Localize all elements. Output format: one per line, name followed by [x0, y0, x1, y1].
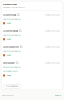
staticText: Register: [55, 94, 62, 96]
staticText: Summarize Payables: [45, 62, 60, 64]
button[interactable]: General Ledger: [3, 61, 60, 65]
staticText: View list: [6, 54, 11, 56]
button[interactable]: View list: [3, 37, 60, 41]
button[interactable]: Reconcile accounts: [3, 69, 60, 73]
button[interactable]: Please set payable task: [3, 65, 60, 69]
button[interactable]: Cash Management: [3, 45, 60, 49]
button[interactable]: View list: [3, 53, 60, 57]
button[interactable]: Please set payable task: [3, 17, 60, 21]
staticText: Please set payable task: [3, 50, 21, 52]
staticText: Start a new chat: [6, 85, 19, 87]
staticText: Close Assistant: [2, 94, 14, 96]
staticText: Please set payable task: [3, 18, 21, 20]
staticText: Need important Work history: [3, 6, 25, 8]
staticText: Account Receivable: [3, 30, 18, 32]
button[interactable]: Account Payable: [3, 13, 60, 17]
staticText: Please set payable task: [3, 34, 21, 36]
staticText: Summarize Payables: [45, 14, 60, 16]
staticText: Summarize Payables: [45, 46, 60, 48]
button[interactable]: Please set payable task: [3, 49, 60, 53]
button[interactable]: Account Receivable: [3, 29, 60, 33]
staticText: View list: [6, 38, 11, 40]
staticText: Reconcile accounts: [3, 70, 18, 72]
button[interactable]: View list: [3, 21, 60, 25]
staticText: Please set payable task: [3, 66, 21, 68]
button[interactable]: Start a new chat: [3, 84, 21, 88]
staticText: View list: [6, 74, 11, 76]
staticText: Close assistant: [3, 3, 17, 6]
button[interactable]: Register: [55, 94, 62, 96]
staticText: Cash Management: [3, 46, 19, 48]
button[interactable]: Please set payable task: [3, 33, 60, 37]
staticText: Summarize Payables: [45, 30, 60, 32]
staticText: Account Payable: [3, 14, 16, 16]
staticText: General Ledger: [3, 62, 15, 64]
staticText: View list: [6, 22, 11, 24]
button[interactable]: View list: [3, 73, 60, 77]
